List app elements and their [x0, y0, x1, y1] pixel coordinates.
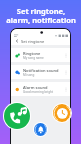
- staticText: Mi song: [23, 73, 35, 77]
- staticText: Ringtone: [23, 51, 41, 56]
- staticText: Alarm sound: [23, 85, 48, 90]
- button[interactable]: Ringtone: [3, 102, 31, 130]
- button[interactable]: Notification sound: [11, 65, 70, 79]
- staticText: Set ringtone, alarm, notification: [6, 6, 76, 25]
- staticText: My song name: [23, 56, 44, 60]
- button[interactable]: Notification: [33, 122, 48, 137]
- button[interactable]: Ringtone: [11, 48, 70, 62]
- button[interactable]: Alarm sound: [52, 103, 72, 123]
- button[interactable]: Alarm sound: [11, 82, 70, 96]
- staticText: Good morning bright: [23, 90, 54, 94]
- staticText: Notification sound: [23, 68, 59, 73]
- staticText: Set ringtone: [21, 39, 45, 44]
- button[interactable]: Back: [14, 38, 20, 44]
